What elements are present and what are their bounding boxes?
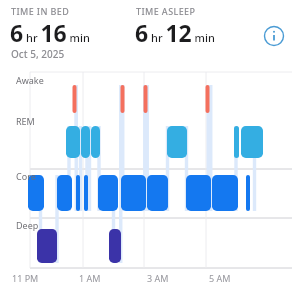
staticText: REM — [16, 115, 35, 127]
button[interactable]: More information — [261, 23, 287, 49]
staticText: Deep — [16, 219, 39, 231]
staticText: 6 hr 12 min — [135, 17, 215, 48]
staticText: 5 AM — [209, 272, 231, 284]
staticText: Awake — [16, 74, 44, 86]
staticText: 11 PM — [12, 272, 39, 284]
staticText: 3 AM — [147, 272, 169, 284]
staticText: Oct 5, 2025 — [11, 47, 65, 61]
staticText: TIME ASLEEP — [136, 5, 196, 17]
staticText: 6 hr 16 min — [10, 17, 90, 48]
staticText: Core — [16, 170, 36, 182]
staticText: TIME IN BED — [11, 5, 70, 17]
staticText: 1 AM — [79, 272, 101, 284]
